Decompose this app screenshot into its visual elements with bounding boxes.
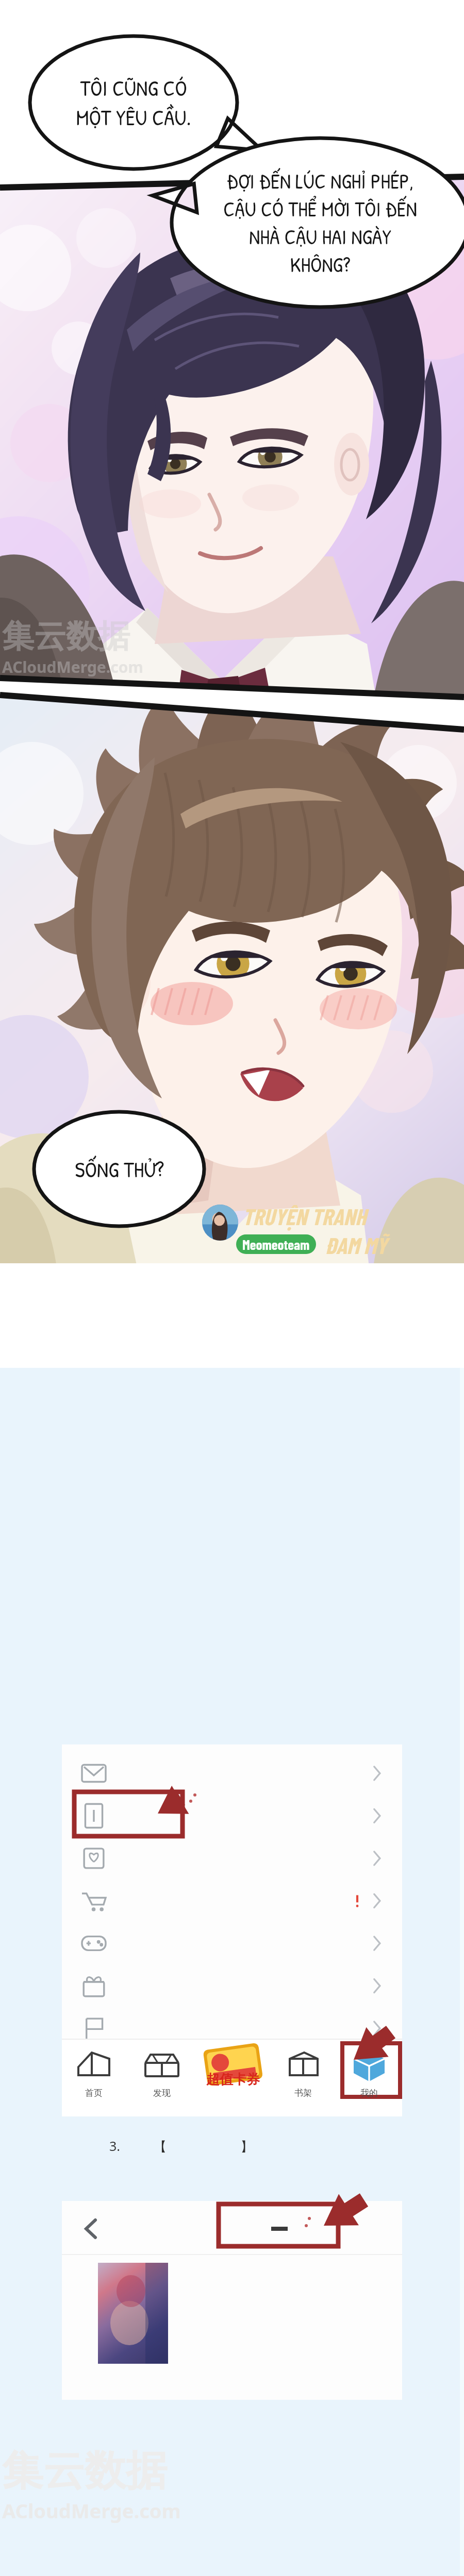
button[interactable]: 我的 — [352, 2088, 387, 2098]
staticText: ACloudMerge.com — [2, 656, 143, 677]
staticText: 集云数据 — [2, 616, 130, 656]
staticText: KHÔNG? — [290, 250, 351, 278]
staticText: NHÀ CẬU HAI NGÀY — [249, 223, 391, 250]
staticText: 我的 — [352, 2088, 387, 2098]
button[interactable]: 首页 — [76, 2088, 111, 2098]
staticText: 发现 — [144, 2088, 179, 2098]
staticText: ĐAM MỸ — [325, 1231, 387, 1259]
staticText: Meomeoteam — [242, 1236, 310, 1252]
staticText: ACloudMerge.com — [2, 2497, 181, 2524]
staticText: ĐỢI ĐẾN LÚC NGHỈ PHÉP, — [227, 167, 413, 195]
button[interactable]: 发现 — [144, 2088, 179, 2098]
staticText: CẬU CÓ THỂ MỜI TÔI ĐẾN — [223, 195, 417, 223]
staticText: 首页 — [76, 2088, 111, 2098]
staticText: 3. 【 】 — [109, 2137, 254, 2155]
staticText: SỐNG THỬ? — [75, 1155, 164, 1184]
staticText: TRUYỆN TRANH — [242, 1202, 367, 1230]
staticText: TÔI CŨNG CÓ — [80, 73, 187, 103]
staticText: MỘT YÊU CẦU. — [76, 103, 191, 132]
button[interactable]: 书架 — [286, 2088, 321, 2098]
staticText: 集云数据 — [2, 2445, 167, 2497]
staticText: 超值卡券 — [206, 2071, 260, 2088]
staticText: 书架 — [286, 2088, 321, 2098]
